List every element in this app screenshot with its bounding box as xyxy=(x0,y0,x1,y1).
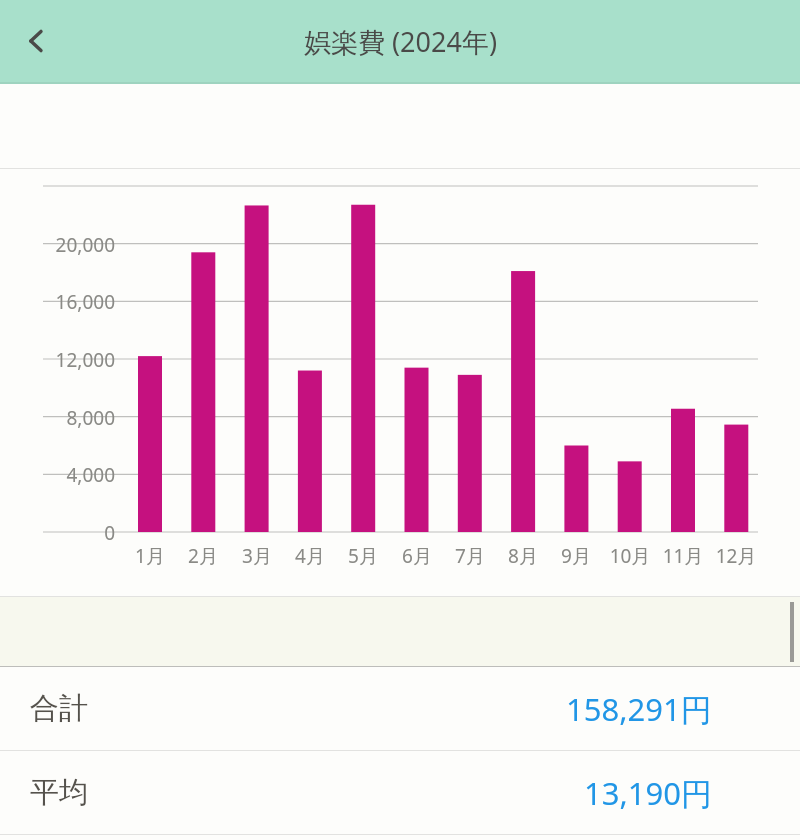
staticText: 12,000 xyxy=(37,347,115,373)
staticText: 3月 xyxy=(231,543,283,569)
staticText: 合計 xyxy=(30,690,88,727)
staticText: 10月 xyxy=(604,543,656,569)
staticText: 7月 xyxy=(444,543,496,569)
staticText: 2月 xyxy=(177,543,229,569)
staticText: 13,190円 xyxy=(584,772,712,814)
button[interactable]: Back xyxy=(8,11,68,71)
staticText: 娯楽費 (2024年) xyxy=(304,23,497,60)
staticText: 8,000 xyxy=(37,405,115,431)
staticText: 16,000 xyxy=(37,289,115,315)
staticText: 11月 xyxy=(657,543,709,569)
staticText: 1月 xyxy=(124,543,176,569)
staticText: 12月 xyxy=(710,543,762,569)
staticText: 8月 xyxy=(497,543,549,569)
button[interactable]: 合計 xyxy=(0,667,800,750)
staticText: 6月 xyxy=(391,543,443,569)
staticText: 158,291円 xyxy=(566,688,712,730)
staticText: 0 xyxy=(37,520,115,546)
staticText: 20,000 xyxy=(37,232,115,258)
staticText: 4月 xyxy=(284,543,336,569)
staticText: 9月 xyxy=(550,543,602,569)
staticText: 5月 xyxy=(337,543,389,569)
staticText: 4,000 xyxy=(37,462,115,488)
button[interactable]: 平均 xyxy=(0,751,800,834)
staticText: 平均 xyxy=(30,774,88,811)
